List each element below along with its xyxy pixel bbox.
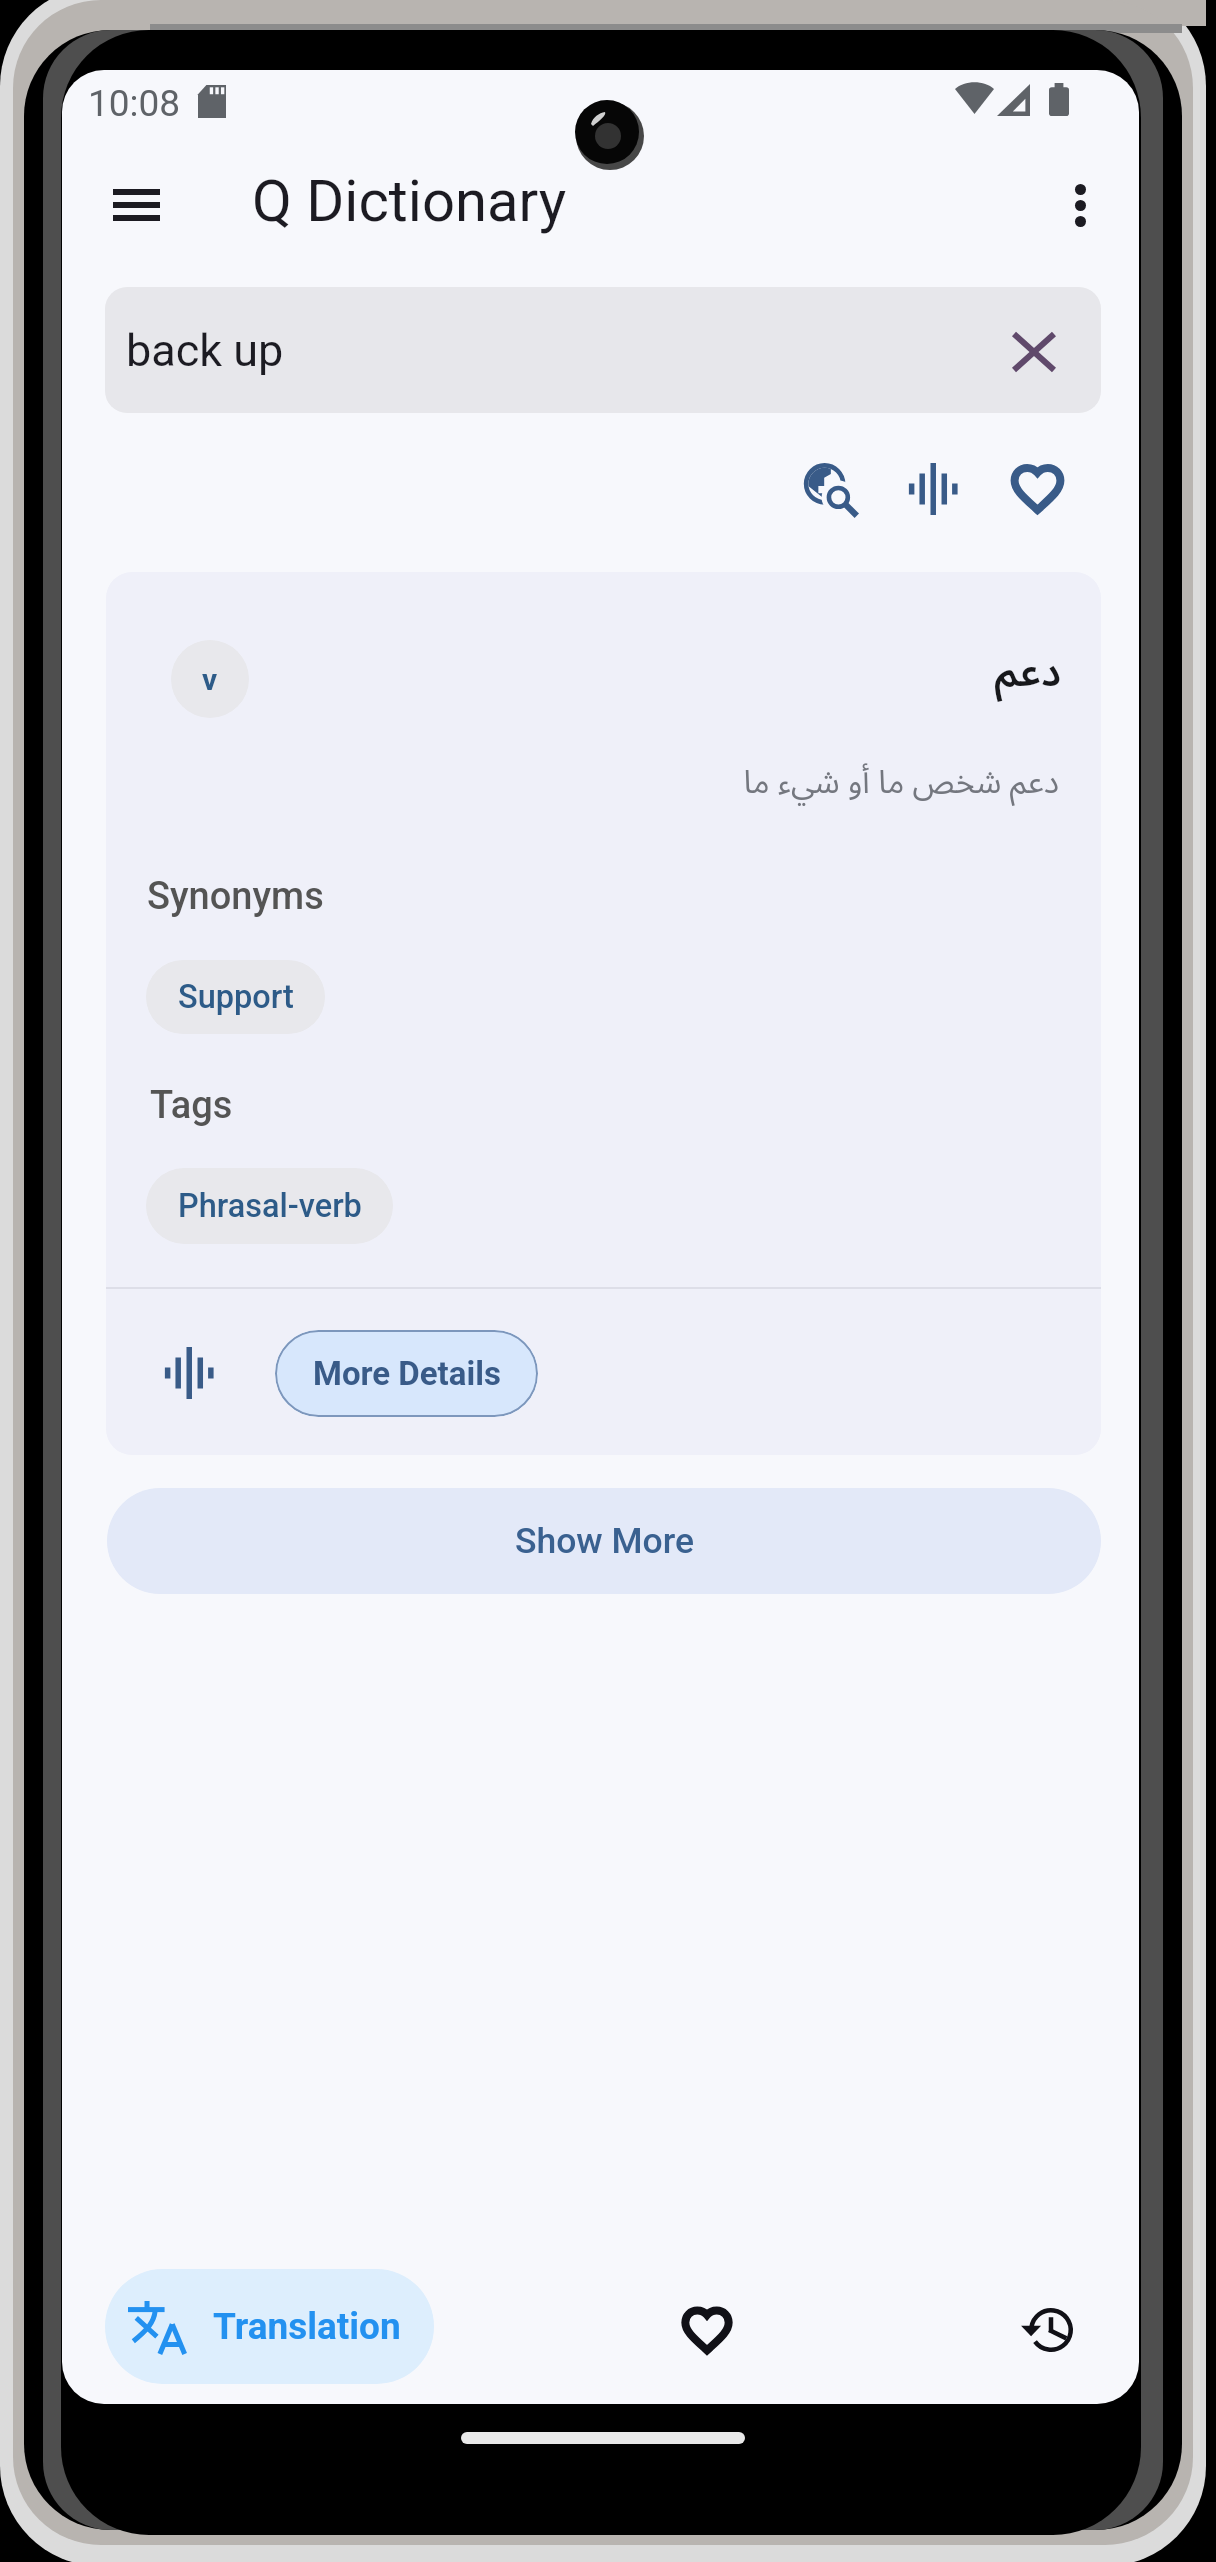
button[interactable]: Phrasal-verb: [146, 1168, 393, 1244]
button[interactable]: back up: [105, 287, 1101, 413]
staticText: Q Dictionary: [252, 167, 567, 235]
button[interactable]: History: [1001, 2284, 1093, 2376]
staticText: Tags: [150, 1083, 233, 1128]
button[interactable]: Add to favourites: [988, 439, 1087, 538]
staticText: Synonyms: [147, 874, 324, 919]
staticText: دعم: [106, 631, 1061, 715]
button[interactable]: Show More: [107, 1488, 1101, 1594]
button[interactable]: More options: [1044, 169, 1116, 241]
button[interactable]: Favourites: [659, 2282, 755, 2378]
button[interactable]: Search the web: [781, 440, 879, 538]
staticText: Translation: [213, 2305, 401, 2348]
staticText: Show More: [515, 1520, 694, 1562]
staticText: 10:08: [88, 82, 181, 125]
button[interactable]: Support: [146, 960, 325, 1034]
staticText: دعم شخص ما أو شيء ما: [106, 749, 1059, 817]
button[interactable]: Translation: [105, 2269, 434, 2384]
staticText: More Details: [313, 1354, 501, 1393]
staticText: back up: [126, 324, 284, 377]
button[interactable]: Pronunciation: [885, 441, 981, 537]
button[interactable]: More Details: [275, 1330, 538, 1417]
button[interactable]: Menu: [89, 169, 184, 241]
button[interactable]: Play pronunciation: [163, 1347, 215, 1399]
staticText: Phrasal-verb: [178, 1187, 362, 1225]
staticText: Support: [178, 978, 294, 1016]
staticText: v: [202, 662, 218, 697]
button[interactable]: Clear search: [999, 317, 1069, 387]
